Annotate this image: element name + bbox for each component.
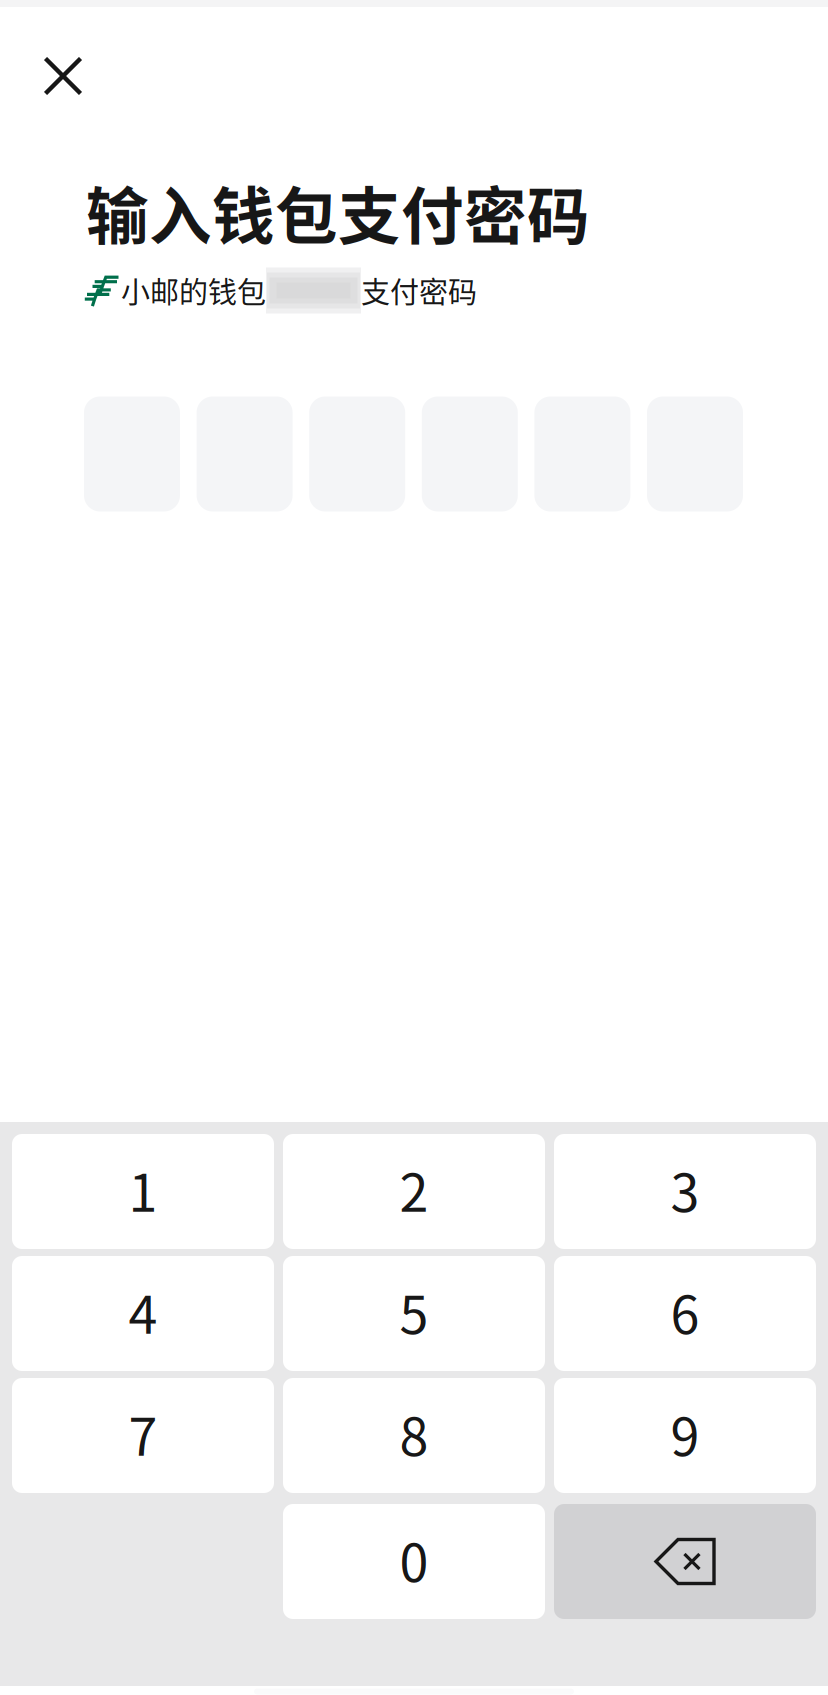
- staticText: 8: [399, 1395, 428, 1471]
- button[interactable]: 5: [283, 1256, 545, 1371]
- button[interactable]: Close: [27, 40, 99, 112]
- staticText: 7: [128, 1395, 157, 1471]
- staticText: 支付密码: [361, 269, 477, 311]
- button[interactable]: 6: [554, 1256, 816, 1371]
- button[interactable]: 7: [12, 1378, 274, 1493]
- button[interactable]: 0: [283, 1504, 545, 1619]
- button[interactable]: 2: [283, 1134, 545, 1249]
- button[interactable]: 1: [12, 1134, 274, 1249]
- staticText: 6: [670, 1273, 699, 1349]
- button[interactable]: 3: [554, 1134, 816, 1249]
- button[interactable]: Delete: [554, 1504, 816, 1619]
- staticText: 0: [399, 1521, 428, 1597]
- staticText: 小邮的钱包: [121, 269, 266, 311]
- staticText: 1: [128, 1151, 157, 1227]
- staticText: 9: [670, 1395, 699, 1471]
- button[interactable]: 4: [12, 1256, 274, 1371]
- button[interactable]: 8: [283, 1378, 545, 1493]
- staticText: 3: [670, 1151, 699, 1227]
- staticText: 5: [399, 1273, 428, 1349]
- staticText: 4: [128, 1273, 157, 1349]
- button[interactable]: Payment password: [84, 396, 743, 511]
- staticText: 输入钱包支付密码: [86, 167, 590, 257]
- button[interactable]: 9: [554, 1378, 816, 1493]
- staticText: 2: [399, 1151, 428, 1227]
